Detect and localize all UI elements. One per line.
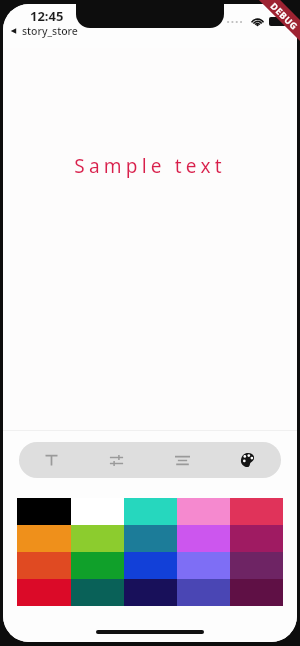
button[interactable]: Colors [215,442,281,478]
button[interactable]: Text style [19,442,84,478]
staticText: 12:45 [30,7,64,25]
button[interactable]: Adjust [84,442,149,478]
button[interactable]: story_store [9,24,78,38]
staticText: story_store [22,24,78,38]
staticText: DEBUG [268,0,300,32]
button[interactable]: Align [149,442,215,478]
staticText: Sample text [3,153,297,179]
